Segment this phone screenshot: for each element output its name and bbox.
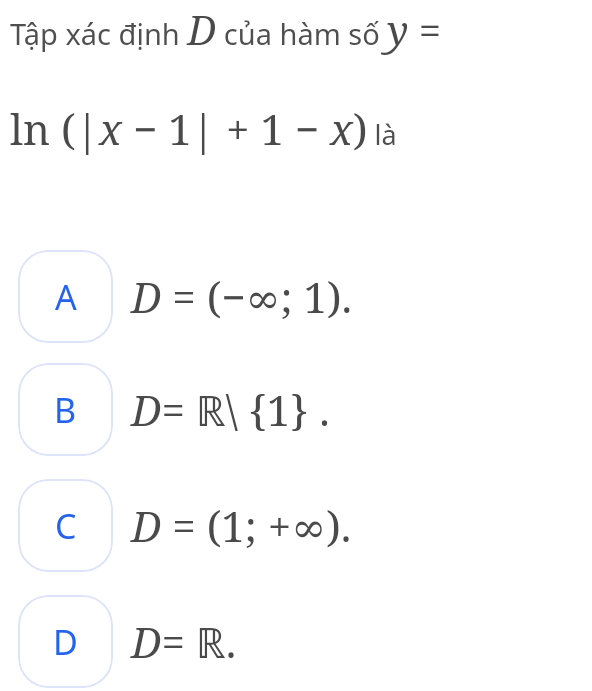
- staticText: D= ℝ.: [131, 613, 237, 670]
- staticText: C: [55, 503, 77, 549]
- staticText: B: [54, 387, 77, 433]
- staticText: D = (1; +∞).: [131, 497, 352, 554]
- button[interactable]: Answer option D: [0, 595, 592, 691]
- staticText: D = (−∞; 1).: [131, 268, 353, 325]
- staticText: Tập xác định D của hàm số y =: [10, 2, 442, 56]
- staticText: D= ℝ\ {1} .: [131, 381, 330, 438]
- button[interactable]: Answer option A: [0, 250, 592, 363]
- button[interactable]: Answer option C: [0, 479, 592, 595]
- staticText: D: [53, 619, 78, 665]
- staticText: A: [55, 274, 77, 320]
- staticText: ln (|x − 1| + 1 − x) là: [10, 100, 397, 157]
- button[interactable]: Answer option B: [0, 363, 592, 479]
